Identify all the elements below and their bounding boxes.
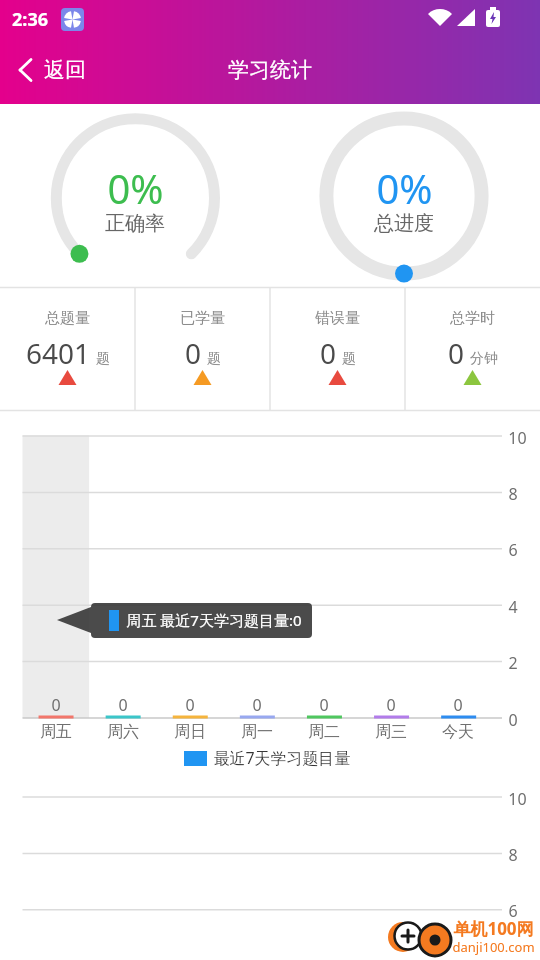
staticText: 周三 xyxy=(375,722,407,742)
staticText: 周五 xyxy=(40,722,72,742)
staticText: 0 xyxy=(508,709,518,731)
staticText: 总题量 xyxy=(45,309,90,328)
staticText: 单机100网 xyxy=(453,917,534,939)
staticText: 0% xyxy=(376,161,433,205)
staticText: 已学量 xyxy=(180,309,225,328)
staticText: 8 xyxy=(508,844,518,866)
staticText: 0% xyxy=(107,161,164,205)
staticText: 0 xyxy=(448,334,465,368)
staticText: 6 xyxy=(508,539,518,561)
staticText: 0 xyxy=(320,334,337,368)
staticText: 8 xyxy=(508,483,518,505)
staticText: 周六 xyxy=(107,722,139,742)
staticText: 错误量 xyxy=(315,309,360,328)
staticText: 周一 xyxy=(241,722,273,742)
button[interactable] xyxy=(405,289,540,410)
staticText: 0 xyxy=(185,334,202,368)
staticText: 6 xyxy=(508,900,518,922)
button[interactable] xyxy=(270,289,405,410)
staticText: 4 xyxy=(508,596,518,618)
staticText: 6401 xyxy=(26,334,91,368)
staticText: 周二 xyxy=(308,722,340,742)
staticText: 返回 xyxy=(44,57,86,83)
staticText: 学习统计 xyxy=(228,57,312,83)
button[interactable] xyxy=(135,289,270,410)
staticText: 周五 最近7天学习题目量:0 xyxy=(126,610,302,630)
staticText: 题 xyxy=(207,350,221,368)
staticText: 周日 xyxy=(174,722,206,742)
staticText: 正确率 xyxy=(105,211,165,236)
staticText: 分钟 xyxy=(470,350,498,368)
button[interactable]: 返回 xyxy=(44,56,114,84)
staticText: 0 xyxy=(252,694,262,716)
staticText: danji100.com xyxy=(452,938,535,956)
staticText: 2:36 xyxy=(12,7,48,32)
staticText: 0 xyxy=(386,694,396,716)
button[interactable]: 单机100网 xyxy=(453,917,540,939)
staticText: 总进度 xyxy=(374,211,434,236)
staticText: 0 xyxy=(118,694,128,716)
staticText: 0 xyxy=(51,694,61,716)
staticText: 10 xyxy=(508,427,527,449)
staticText: 0 xyxy=(319,694,329,716)
staticText: 今天 xyxy=(442,722,474,742)
staticText: 题 xyxy=(96,350,110,368)
staticText: 最近7天学习题目量 xyxy=(213,747,351,769)
staticText: 0 xyxy=(185,694,195,716)
staticText: 题 xyxy=(342,350,356,368)
staticText: 0 xyxy=(453,694,463,716)
staticText: 10 xyxy=(508,788,527,810)
button[interactable] xyxy=(0,289,135,410)
staticText: 2 xyxy=(508,652,518,674)
staticText: 总学时 xyxy=(450,309,495,328)
